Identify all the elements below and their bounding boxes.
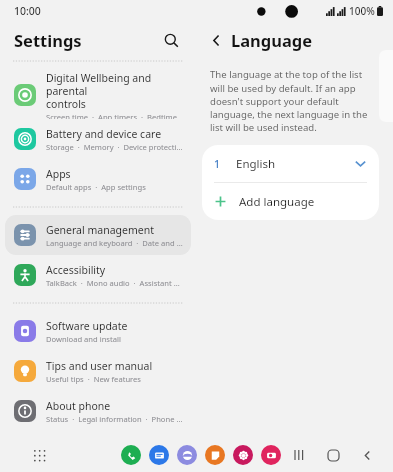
button[interactable]: Gallery: [233, 445, 253, 465]
button[interactable]: Notes: [205, 445, 225, 465]
staticText: English: [236, 156, 354, 172]
staticText: Battery and device care: [46, 127, 162, 141]
button[interactable]: 1: [202, 145, 379, 182]
staticText: About phone: [46, 399, 111, 413]
button[interactable]: Add language: [202, 183, 379, 220]
button[interactable]: General management: [5, 215, 191, 255]
button[interactable]: Search: [158, 27, 184, 53]
staticText: Software update: [46, 319, 128, 333]
button[interactable]: Digital Wellbeing and parental controls: [5, 71, 191, 119]
button[interactable]: Accessibility: [5, 255, 191, 295]
button[interactable]: Internet: [177, 445, 197, 465]
button[interactable]: Home: [323, 445, 343, 465]
staticText: Language: [231, 29, 313, 51]
staticText: Screen time · App timers · Bedtime mode: [46, 112, 183, 119]
staticText: Storage · Memory · Device protection: [46, 142, 183, 152]
staticText: Tips and user manual: [46, 359, 153, 373]
staticText: Settings: [14, 29, 82, 51]
button[interactable]: Phone: [121, 445, 141, 465]
staticText: General management: [46, 223, 154, 237]
button[interactable]: Messages: [149, 445, 169, 465]
button[interactable]: Apps: [5, 159, 191, 199]
staticText: TalkBack · Mono audio · Assistant menu: [46, 278, 183, 288]
staticText: Add language: [239, 194, 315, 210]
staticText: Language and keyboard · Date and time: [46, 238, 183, 248]
button[interactable]: Back: [357, 445, 377, 465]
staticText: Digital Wellbeing and parental controls: [46, 71, 183, 111]
button[interactable]: Recents: [289, 445, 309, 465]
staticText: Accessibility: [46, 263, 106, 277]
staticText: Apps: [46, 167, 71, 181]
staticText: Default apps · App settings: [46, 182, 146, 192]
staticText: Status · Legal information · Phone name: [46, 414, 183, 424]
staticText: 1: [214, 157, 221, 171]
staticText: Useful tips · New features: [46, 374, 141, 384]
staticText: Download and install: [46, 334, 121, 344]
staticText: 100%: [349, 4, 375, 18]
button[interactable]: Camera: [261, 445, 281, 465]
button[interactable]: Tips and user manual: [5, 351, 191, 391]
button[interactable]: Apps: [28, 444, 50, 466]
button[interactable]: Battery and device care: [5, 119, 191, 159]
staticText: The language at the top of the list will…: [210, 68, 371, 133]
staticText: 10:00: [14, 4, 41, 18]
button[interactable]: Software update: [5, 311, 191, 351]
button[interactable]: About phone: [5, 391, 191, 431]
button[interactable]: Back: [204, 28, 228, 52]
